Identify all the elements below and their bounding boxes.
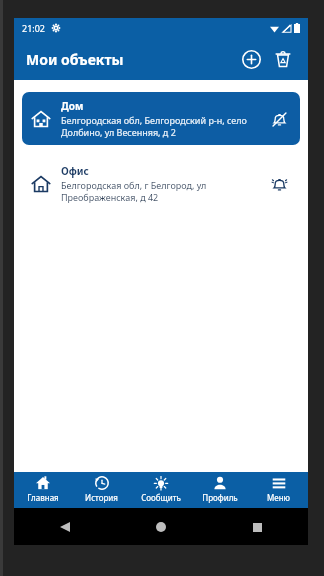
button[interactable]: Add object xyxy=(236,44,266,74)
staticText: 21:02 xyxy=(22,22,46,34)
staticText: Мои объекты xyxy=(26,50,124,69)
button[interactable]: Офис xyxy=(22,157,300,210)
staticText: Долбино, ул Весенняя, д 2 xyxy=(61,126,176,138)
button[interactable]: Главная xyxy=(14,472,72,508)
button[interactable]: Recents xyxy=(246,516,268,538)
button[interactable]: Профиль xyxy=(190,472,249,508)
button[interactable]: Дом xyxy=(22,92,300,145)
button[interactable]: Меню xyxy=(249,472,308,508)
staticText: Дом xyxy=(61,99,84,113)
button[interactable]: Сообщить xyxy=(131,472,190,508)
button[interactable]: Home xyxy=(150,516,172,538)
staticText: Белгородская обл, Белгородский р-н, село xyxy=(61,114,247,126)
button[interactable]: История xyxy=(72,472,131,508)
button[interactable]: Notifications on xyxy=(266,171,292,197)
staticText: Главная xyxy=(27,492,59,503)
button[interactable]: Back xyxy=(54,516,76,538)
staticText: Белгородская обл, г Белгород, ул xyxy=(61,179,207,191)
staticText: Меню xyxy=(267,492,290,503)
staticText: Сообщить xyxy=(141,492,181,503)
staticText: Преображенская, д 42 xyxy=(61,191,159,203)
button[interactable]: Delete xyxy=(268,44,298,74)
staticText: История xyxy=(85,492,118,503)
staticText: Офис xyxy=(61,164,89,178)
staticText: Профиль xyxy=(202,492,238,503)
button[interactable]: Notifications off xyxy=(266,106,292,132)
